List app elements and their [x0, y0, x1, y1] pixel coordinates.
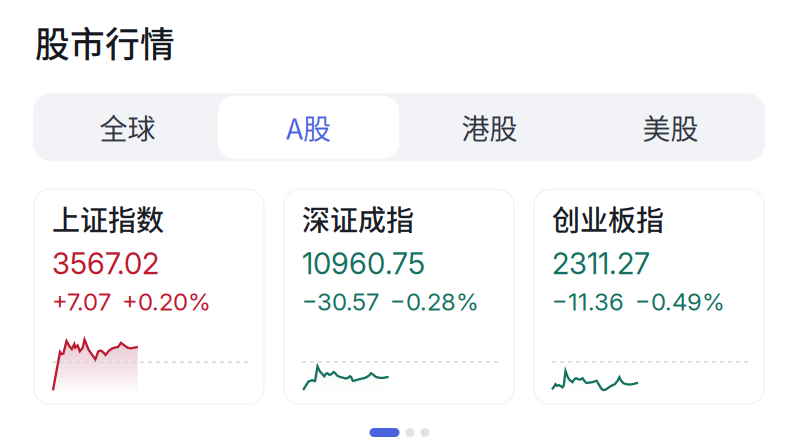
staticText: 2311.27: [552, 246, 650, 281]
staticText: −30.57 −0.28%: [302, 287, 479, 316]
button[interactable]: 港股: [399, 96, 580, 159]
staticText: 深证成指: [302, 198, 414, 239]
button[interactable]: 全球: [37, 96, 218, 159]
staticText: 10960.75: [302, 246, 425, 281]
staticText: 港股: [461, 107, 517, 147]
staticText: 上证指数: [52, 198, 164, 239]
staticText: A股: [286, 107, 331, 147]
staticText: +7.07 +0.20%: [52, 287, 211, 316]
staticText: 美股: [642, 107, 698, 147]
button[interactable]: 创业板指: [534, 189, 764, 404]
staticText: 股市行情: [35, 17, 175, 67]
staticText: 全球: [99, 107, 155, 147]
staticText: 3567.02: [52, 246, 159, 281]
button[interactable]: 美股: [580, 96, 761, 159]
button[interactable]: 上证指数: [34, 189, 264, 404]
button[interactable]: A股: [218, 96, 399, 159]
staticText: 创业板指: [552, 198, 664, 239]
staticText: −11.36 −0.49%: [552, 287, 725, 316]
button[interactable]: 深证成指: [284, 189, 514, 404]
